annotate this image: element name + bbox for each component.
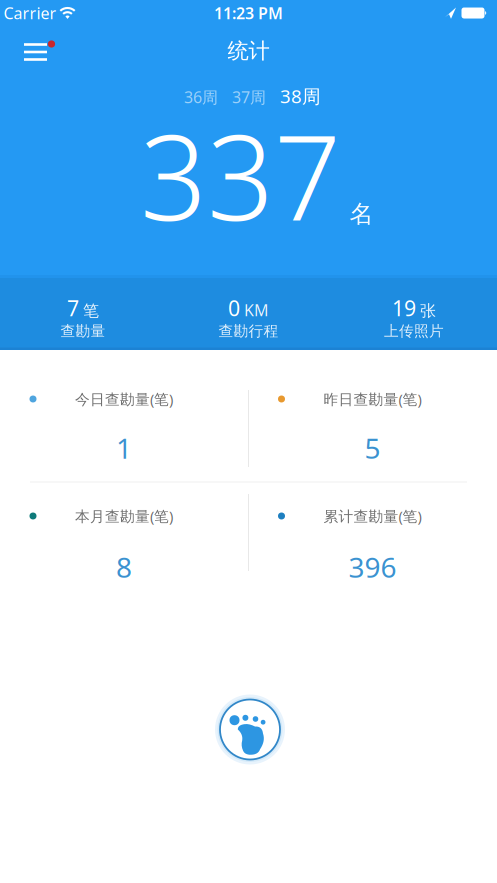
staticText: 查勘量 [60,322,105,340]
staticText: 37周 [232,86,266,108]
button[interactable]: 36周 [184,86,218,108]
staticText: 名 [349,199,373,229]
button[interactable]: 足迹 [215,694,285,764]
staticText: 本月查勘量(笔) [75,506,173,526]
staticText: 累计查勘量(笔) [323,506,421,526]
staticText: 396 [348,548,396,586]
staticText: 11:23 PM [214,2,283,24]
staticText: 8 [116,548,132,586]
staticText: 36周 [184,86,218,108]
staticText: 查勘行程 [218,322,278,340]
staticText: 张 [420,301,436,321]
button[interactable]: Menu [23,40,55,61]
staticText: 笔 [83,301,99,321]
button[interactable]: 38周 [280,84,321,108]
staticText: 19 [392,294,416,322]
staticText: 今日查勘量(笔) [75,389,173,409]
staticText: 0 [228,294,240,322]
staticText: 统计 [227,38,269,64]
staticText: 7 [67,294,79,322]
button[interactable]: 37周 [232,86,266,108]
staticText: 38周 [280,84,321,108]
staticText: 昨日查勘量(笔) [323,389,421,409]
staticText: 337 [140,97,341,253]
staticText: 5 [364,429,380,467]
staticText: KM [244,299,269,321]
staticText: 上传照片 [384,322,444,340]
staticText: 1 [116,429,132,467]
staticText: Carrier [3,2,56,24]
